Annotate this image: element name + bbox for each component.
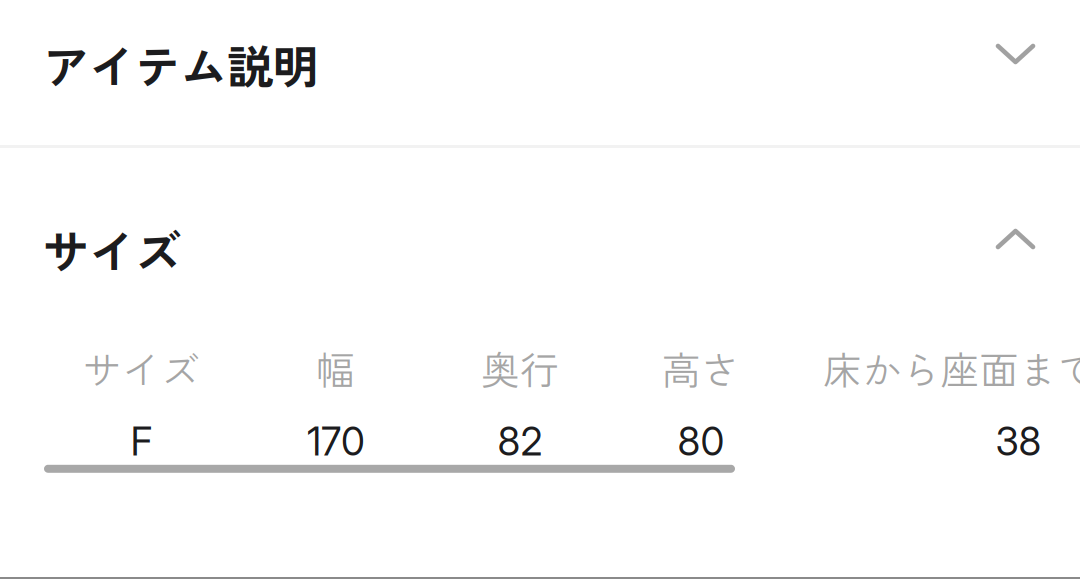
button[interactable]: アイテム説明 [0, 0, 1080, 145]
staticText: F [130, 418, 152, 465]
staticText: 床から座面までの高さ [823, 340, 1080, 396]
staticText: 38 [995, 418, 1041, 465]
staticText: アイテム説明 [43, 31, 319, 98]
staticText: 幅 [316, 340, 355, 396]
staticText: サイズ [83, 340, 200, 396]
staticText: 80 [677, 418, 724, 465]
staticText: 奥行 [481, 340, 559, 396]
staticText: 82 [497, 418, 542, 465]
button[interactable]: サイズ [0, 148, 1080, 340]
staticText: 高さ [662, 340, 740, 396]
staticText: 170 [307, 418, 365, 465]
staticText: サイズ [43, 216, 181, 283]
